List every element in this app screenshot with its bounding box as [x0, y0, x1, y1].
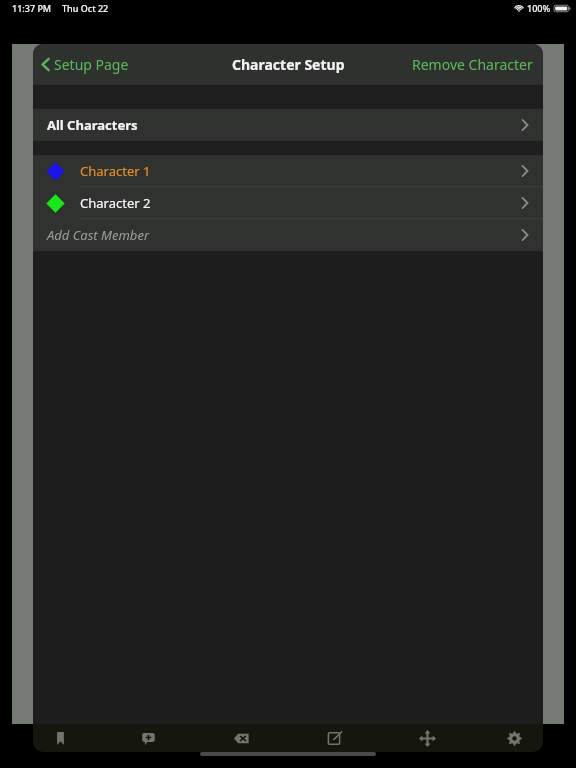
staticText: Add Cast Member [47, 226, 150, 244]
button[interactable]: Settings [497, 724, 531, 752]
staticText: All Characters [47, 116, 138, 134]
staticText: Remove Character [412, 55, 533, 74]
button[interactable]: Add note [131, 724, 165, 752]
button[interactable]: Move [410, 724, 444, 752]
staticText: Thu Oct 22 [62, 2, 109, 14]
button[interactable]: Delete [224, 724, 258, 752]
staticText: Character Setup [232, 55, 345, 74]
button[interactable]: Setup Page [33, 51, 137, 78]
staticText: Character 2 [80, 194, 151, 212]
staticText: 100% [527, 2, 551, 14]
button[interactable]: Character 2 [33, 187, 543, 219]
button[interactable]: Add Cast Member [33, 219, 543, 251]
button[interactable]: Remove Character [402, 49, 543, 80]
button[interactable]: Bookmark [43, 724, 77, 752]
button[interactable]: Character 1 [33, 155, 543, 187]
staticText: Character 1 [80, 162, 151, 180]
button[interactable]: All Characters [33, 109, 543, 141]
staticText: Setup Page [54, 55, 129, 74]
button[interactable]: Compose [317, 724, 351, 752]
staticText: 11:37 PM [12, 2, 52, 14]
